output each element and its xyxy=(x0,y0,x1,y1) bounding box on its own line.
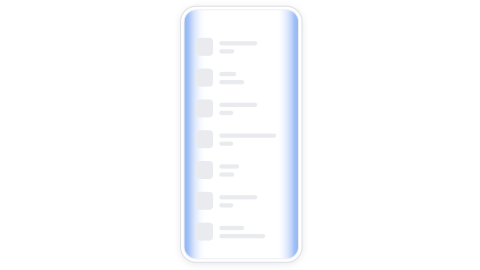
button[interactable] xyxy=(184,161,299,179)
button[interactable] xyxy=(184,38,299,56)
button[interactable] xyxy=(184,130,299,148)
button[interactable] xyxy=(184,99,299,117)
button[interactable] xyxy=(184,223,299,241)
button[interactable] xyxy=(184,192,299,210)
button[interactable] xyxy=(184,69,299,87)
